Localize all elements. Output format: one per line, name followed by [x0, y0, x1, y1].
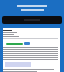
button[interactable]	[24, 42, 30, 45]
button[interactable]	[2, 16, 62, 24]
button[interactable]	[6, 43, 23, 45]
